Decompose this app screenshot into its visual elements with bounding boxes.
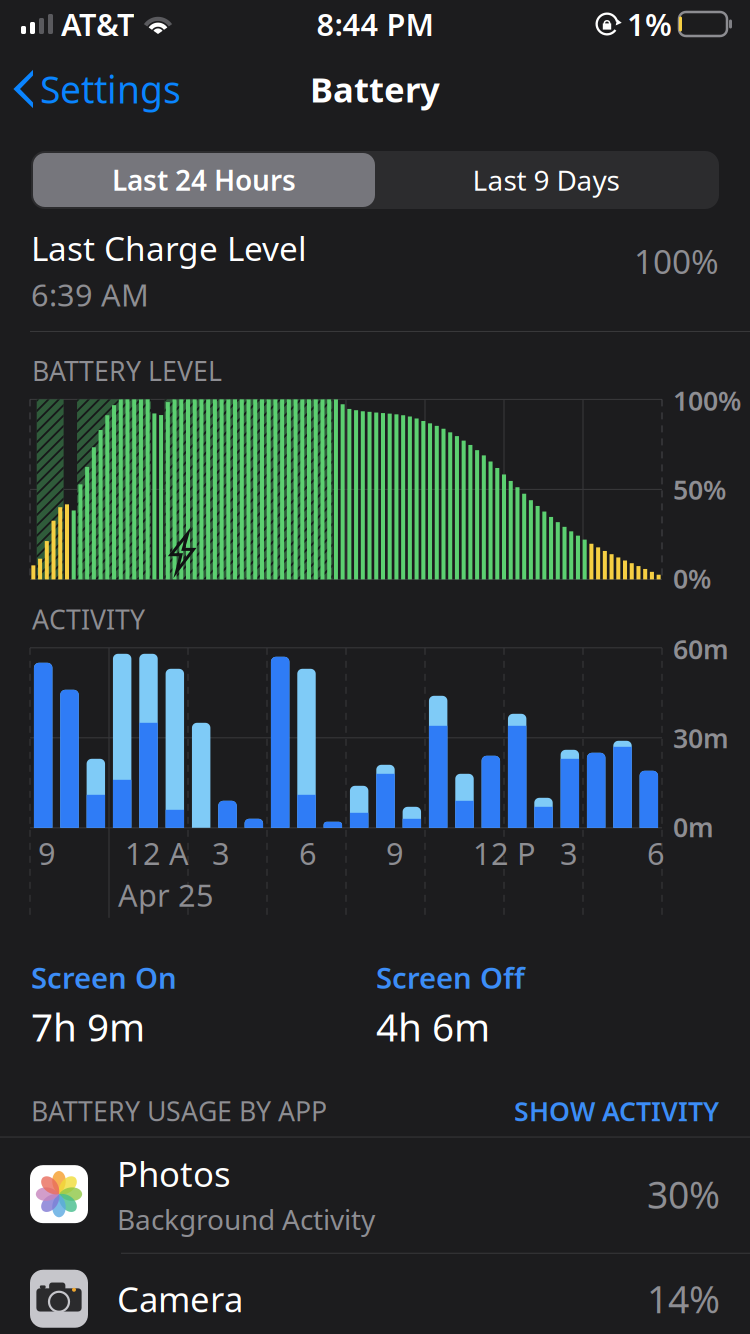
staticText: 8:44 PM — [316, 4, 433, 44]
staticText: Last 9 Days — [472, 161, 619, 199]
staticText: Camera — [117, 1276, 243, 1322]
staticText: Photos — [117, 1150, 231, 1196]
button[interactable]: Last 24 Hours — [33, 153, 375, 207]
staticText: 100% — [634, 239, 719, 283]
button[interactable]: Camera — [0, 1254, 750, 1334]
staticText: 7h 9m — [31, 1001, 145, 1052]
staticText: Screen On — [31, 958, 177, 997]
button[interactable]: SHOW ACTIVITY — [514, 1093, 719, 1128]
staticText: Apr 25 — [118, 874, 214, 915]
staticText: 30m — [673, 720, 729, 755]
button[interactable]: Photos — [0, 1137, 750, 1253]
staticText: 30% — [647, 1169, 720, 1219]
staticText: 0% — [673, 561, 711, 596]
staticText: Battery — [310, 66, 440, 112]
staticText: 6 — [299, 833, 317, 873]
staticText: SHOW ACTIVITY — [514, 1093, 719, 1128]
staticText: 14% — [647, 1274, 720, 1324]
staticText: 0m — [673, 809, 714, 844]
staticText: 1% — [627, 4, 672, 44]
button[interactable]: Last 9 Days — [375, 153, 717, 207]
staticText: 9 — [386, 833, 404, 873]
staticText: 50% — [673, 472, 726, 507]
staticText: Screen Off — [376, 958, 525, 997]
staticText: 60m — [673, 631, 729, 666]
staticText: 4h 6m — [376, 1001, 490, 1052]
staticText: AT&T — [61, 4, 134, 44]
staticText: 100% — [673, 383, 741, 418]
staticText: BATTERY LEVEL — [32, 353, 222, 388]
staticText: 6:39 AM — [31, 274, 149, 315]
staticText: ACTIVITY — [32, 601, 145, 637]
staticText: 6 — [647, 833, 665, 873]
staticText: BATTERY USAGE BY APP — [31, 1093, 327, 1128]
staticText: 9 — [38, 833, 56, 873]
staticText: Last Charge Level — [31, 226, 307, 270]
staticText: Settings — [40, 64, 181, 114]
button[interactable]: Settings — [0, 56, 181, 122]
staticText: Last 24 Hours — [112, 161, 296, 199]
staticText: 12 P — [473, 833, 536, 873]
staticText: Background Activity — [117, 1201, 375, 1238]
staticText: 3 — [212, 833, 230, 873]
staticText: 12 A — [125, 833, 189, 873]
staticText: 3 — [560, 833, 578, 873]
